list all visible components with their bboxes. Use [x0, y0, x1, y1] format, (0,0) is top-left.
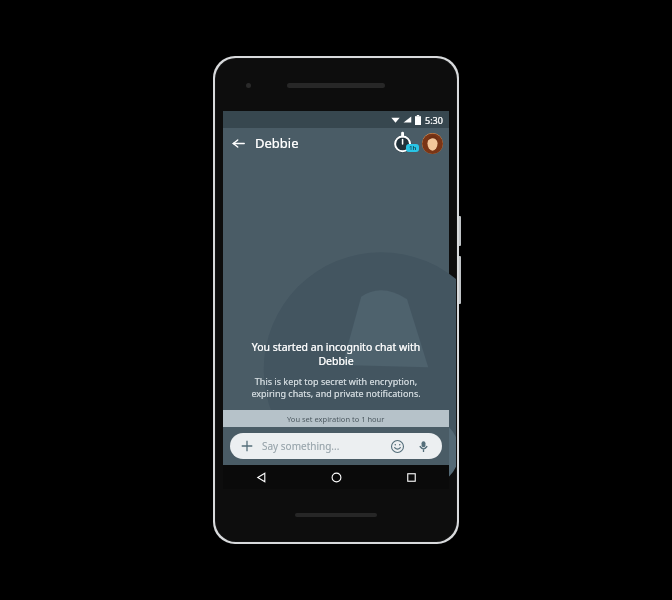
- staticText: Say something...: [262, 439, 340, 453]
- staticText: You started an incognito chat with Debbi…: [237, 340, 435, 368]
- button[interactable]: Profile photo of Debbie: [422, 133, 443, 154]
- button[interactable]: Home: [299, 465, 374, 489]
- button[interactable]: Add attachment: [238, 437, 256, 455]
- button[interactable]: You set expiration to 1 hour: [223, 410, 449, 427]
- button[interactable]: Voice message: [413, 436, 433, 456]
- staticText: This is kept top secret with encryption,…: [237, 375, 435, 400]
- staticText: Debbie: [255, 134, 299, 152]
- button[interactable]: Back: [223, 465, 299, 489]
- staticText: 1h: [409, 144, 417, 152]
- staticText: You set expiration to 1 hour: [287, 414, 385, 424]
- staticText: 5:30: [425, 114, 443, 126]
- button[interactable]: Message expiration: [394, 132, 420, 154]
- button[interactable]: Add attachment: [230, 433, 442, 459]
- button[interactable]: Insert emoji: [387, 436, 407, 456]
- button[interactable]: Back: [223, 128, 253, 158]
- button[interactable]: Recent apps: [374, 465, 449, 489]
